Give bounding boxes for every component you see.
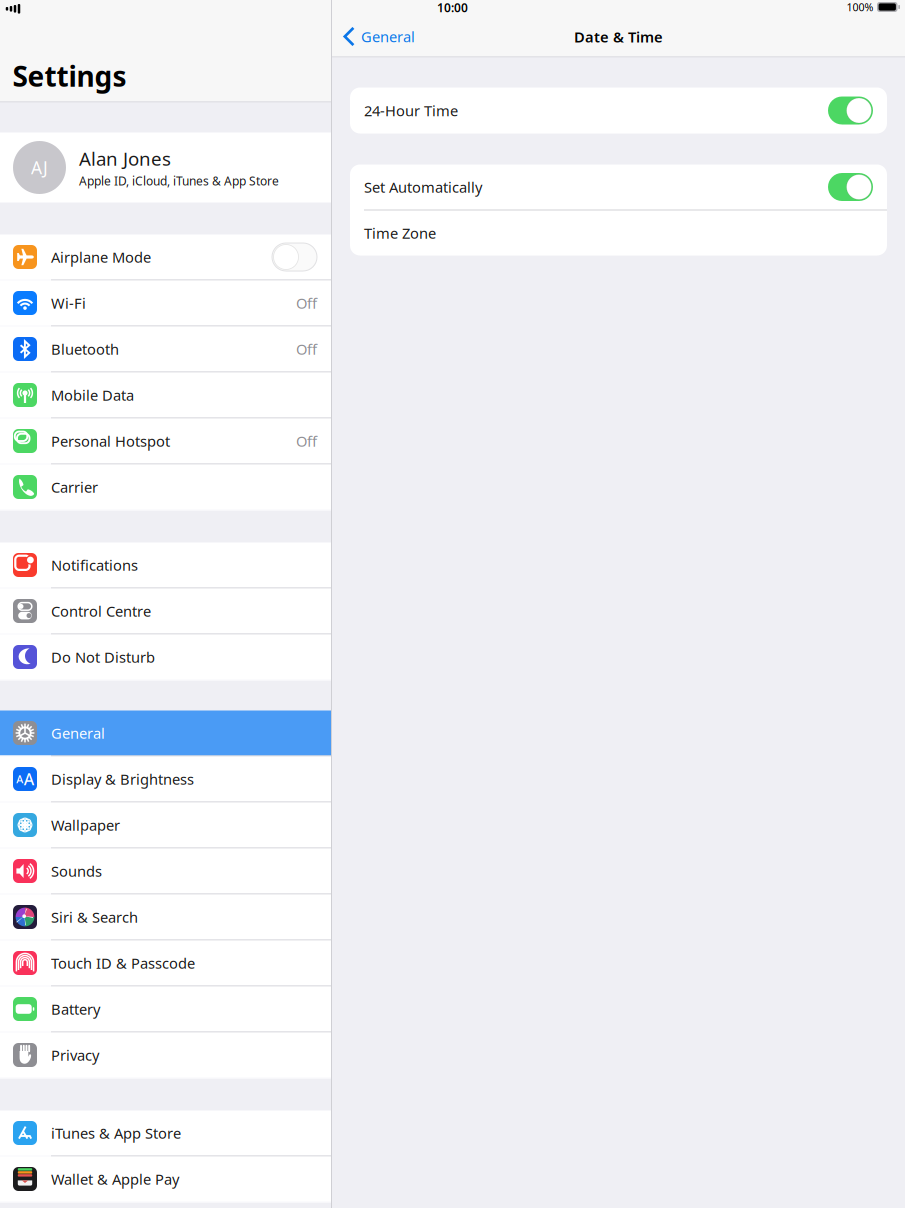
staticText: Wi-Fi <box>51 293 86 313</box>
staticText: Mobile Data <box>51 385 134 405</box>
button[interactable]: AJ <box>0 132 331 202</box>
button[interactable]: Touch ID & Passcode <box>0 940 331 985</box>
staticText: Time Zone <box>364 223 436 243</box>
button[interactable]: Wi-Fi <box>0 280 331 325</box>
staticText: General <box>361 27 415 46</box>
button[interactable]: Time Zone <box>350 210 887 255</box>
staticText: Carrier <box>51 477 98 497</box>
staticText: Wallpaper <box>51 815 120 835</box>
staticText: iTunes & App Store <box>51 1123 181 1143</box>
staticText: Off <box>296 431 317 451</box>
staticText: Airplane Mode <box>51 247 151 267</box>
button[interactable]: Notifications <box>0 542 331 587</box>
staticText: 24-Hour Time <box>364 101 458 120</box>
button[interactable]: Siri & Search <box>0 894 331 939</box>
staticText: A <box>16 772 23 786</box>
staticText: Siri & Search <box>51 907 138 927</box>
staticText: Touch ID & Passcode <box>51 953 195 973</box>
staticText: Privacy <box>51 1045 99 1065</box>
button[interactable]: General <box>332 0 424 56</box>
staticText: Wallet & Apple Pay <box>51 1169 179 1189</box>
button[interactable]: Wallet & Apple Pay <box>0 1156 331 1201</box>
staticText: General <box>51 723 105 743</box>
button[interactable]: Personal Hotspot <box>0 418 331 463</box>
button[interactable]: Mobile Data <box>0 372 331 417</box>
button[interactable]: Battery <box>0 986 331 1031</box>
staticText: Control Centre <box>51 601 151 621</box>
staticText: Settings <box>12 57 126 95</box>
staticText: 100% <box>846 0 873 14</box>
button[interactable]: Airplane Mode <box>0 234 331 279</box>
button[interactable]: Privacy <box>0 1032 331 1077</box>
button[interactable]: General <box>0 710 331 755</box>
staticText: A <box>24 768 34 790</box>
button[interactable]: Wallpaper <box>0 802 331 847</box>
button[interactable]: A <box>0 756 331 801</box>
staticText: Set Automatically <box>364 177 482 197</box>
staticText: Off <box>296 293 317 313</box>
button[interactable]: Set Automatically <box>350 164 887 209</box>
staticText: Personal Hotspot <box>51 431 170 451</box>
staticText: Notifications <box>51 555 138 575</box>
staticText: Sounds <box>51 861 102 881</box>
staticText: Display & Brightness <box>51 769 194 789</box>
button[interactable]: Bluetooth <box>0 326 331 371</box>
staticText: 10:00 <box>437 0 468 15</box>
staticText: Apple ID, iCloud, iTunes & App Store <box>79 173 279 189</box>
staticText: Do Not Disturb <box>51 647 155 667</box>
button[interactable]: iTunes & App Store <box>0 1110 331 1155</box>
button[interactable]: Control Centre <box>0 588 331 633</box>
button[interactable]: Sounds <box>0 848 331 893</box>
staticText: Bluetooth <box>51 339 119 359</box>
button[interactable]: Carrier <box>0 464 331 509</box>
staticText: Battery <box>51 999 100 1019</box>
staticText: AJ <box>31 156 48 179</box>
button[interactable]: 24-Hour Time <box>350 87 887 133</box>
staticText: Date & Time <box>574 27 663 46</box>
staticText: Off <box>296 339 317 359</box>
staticText: Alan Jones <box>79 146 171 171</box>
button[interactable]: Do Not Disturb <box>0 634 331 679</box>
